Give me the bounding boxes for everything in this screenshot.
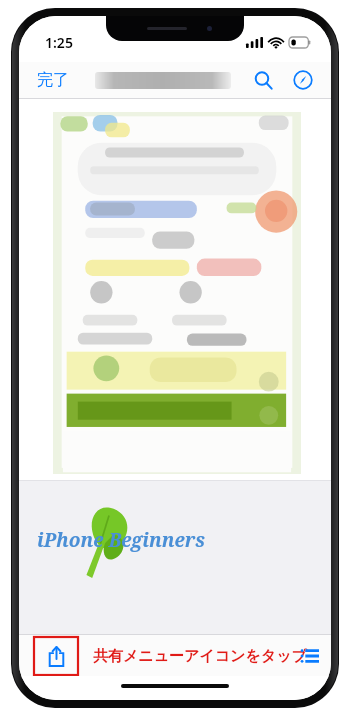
staticText: 1:25 <box>45 33 73 52</box>
button[interactable]: 完了 <box>29 66 77 94</box>
button[interactable]: Share <box>34 637 78 675</box>
staticText: 共有メニューアイコンをタップ <box>93 647 307 666</box>
staticText: 完了 <box>37 70 69 90</box>
button[interactable]: Safari <box>287 64 319 96</box>
staticText: iPhone Beginners <box>37 527 206 553</box>
button[interactable]: Search <box>247 64 279 96</box>
button[interactable]: Bookmarks <box>295 641 325 671</box>
